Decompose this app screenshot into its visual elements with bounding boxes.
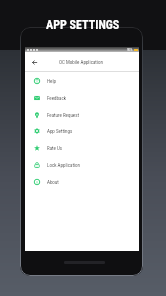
button[interactable]: Back — [30, 58, 39, 67]
button[interactable]: Help — [25, 72, 139, 89]
button[interactable]: App Settings — [25, 122, 139, 139]
button[interactable]: Feature Request — [25, 106, 139, 123]
staticText: OC Mobile Application — [59, 59, 103, 65]
staticText: Rate Us — [47, 145, 63, 151]
button[interactable]: Rate Us — [25, 139, 139, 156]
staticText: About — [47, 179, 59, 185]
staticText: Help — [47, 78, 57, 84]
button[interactable]: About — [25, 173, 139, 190]
staticText: APP SETTINGS — [46, 18, 120, 32]
staticText: Lock Application — [47, 162, 80, 168]
button[interactable]: Feedback — [25, 89, 139, 106]
staticText: 90% — [127, 48, 133, 52]
staticText: Feedback — [47, 95, 66, 101]
staticText: Feature Request — [47, 112, 79, 118]
button[interactable]: Lock Application — [25, 156, 139, 173]
staticText: App Settings — [47, 128, 73, 134]
